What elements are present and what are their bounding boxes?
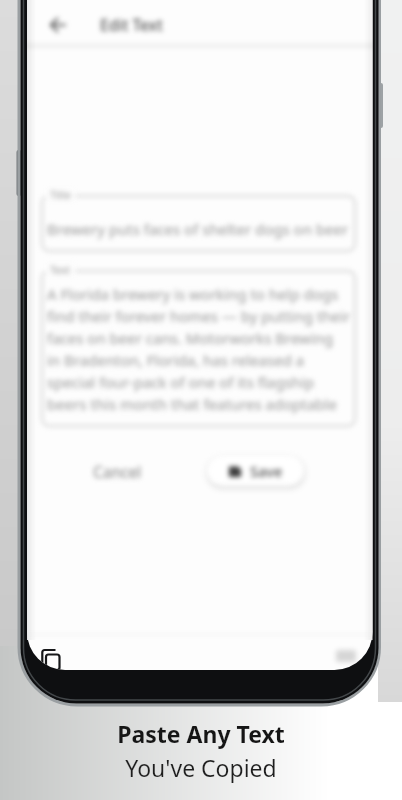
- staticText: Save: [250, 461, 283, 481]
- button[interactable]: [41, 270, 356, 427]
- button[interactable]: [35, 642, 69, 670]
- staticText: Paste Any Text: [117, 718, 285, 749]
- button[interactable]: [48, 15, 68, 35]
- staticText: Title: [50, 188, 71, 202]
- staticText: Text: [50, 263, 71, 277]
- staticText: Cancel: [93, 461, 142, 482]
- button[interactable]: Cancel: [87, 455, 148, 488]
- button[interactable]: [41, 195, 356, 252]
- staticText: A Florida brewery is working to help dog…: [47, 284, 351, 415]
- staticText: Brewery puts faces of shelter dogs on be…: [47, 219, 349, 239]
- button[interactable]: Save: [207, 456, 304, 486]
- staticText: Edit Text: [100, 14, 163, 35]
- staticText: You've Copied: [125, 752, 277, 783]
